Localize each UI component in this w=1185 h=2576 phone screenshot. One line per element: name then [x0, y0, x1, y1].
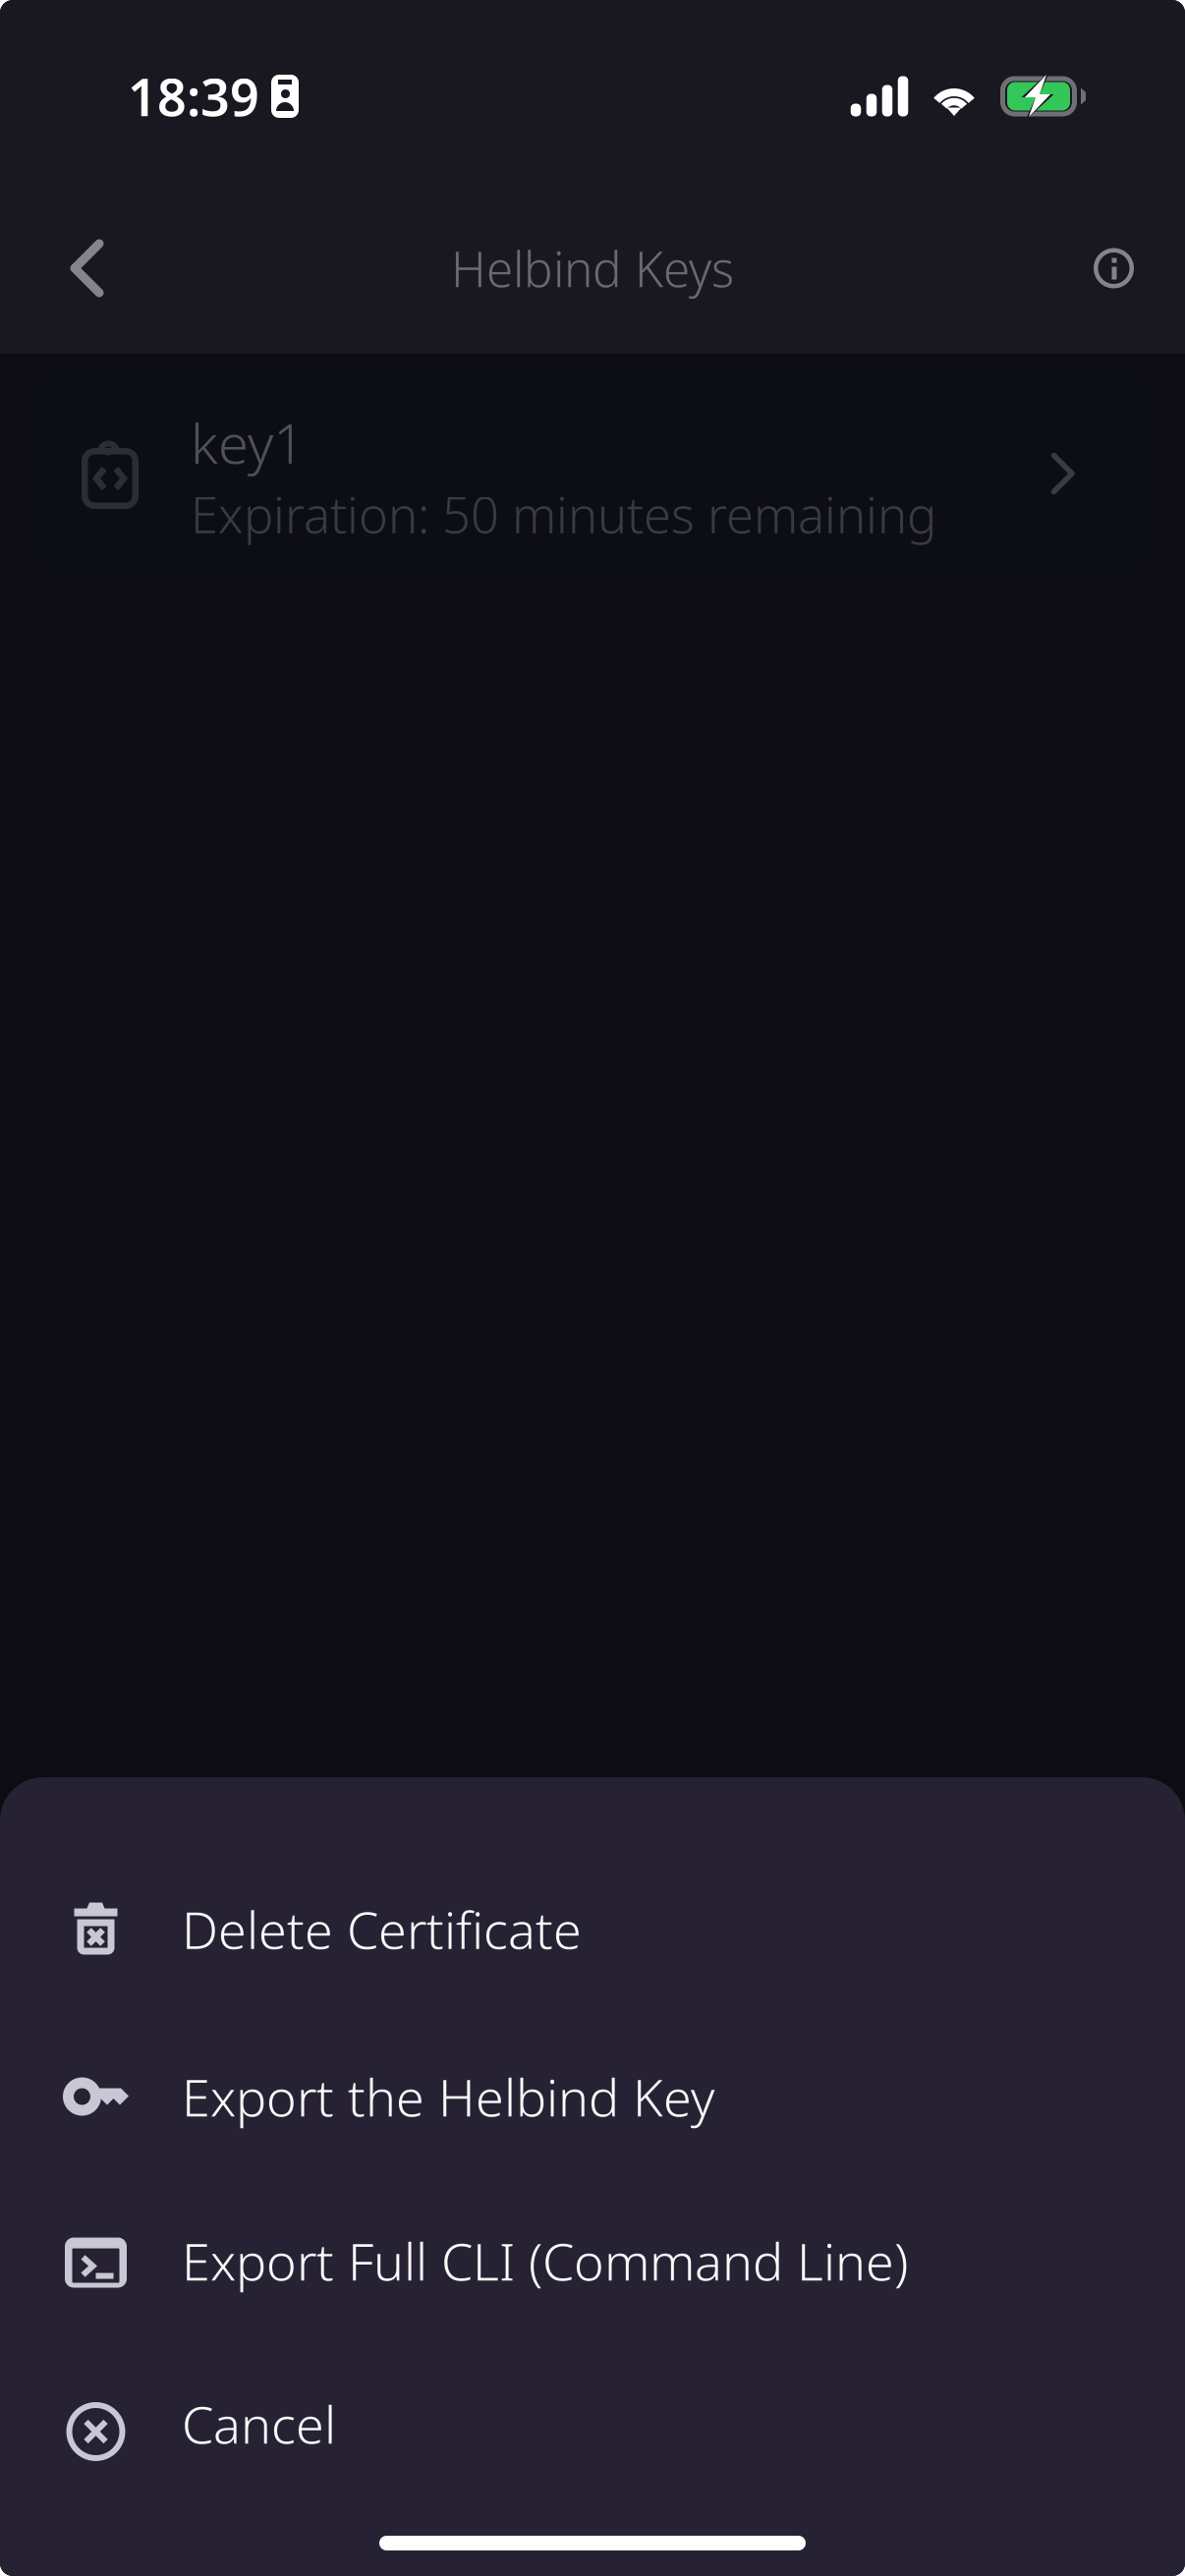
staticText: Delete Certificate [182, 1895, 582, 1963]
button[interactable]: Information [1068, 217, 1159, 320]
staticText: key1 [191, 406, 305, 479]
staticText: Helbind Keys [451, 236, 734, 300]
staticText: Expiration: 50 minutes remaining [191, 481, 936, 547]
button[interactable]: Back [43, 209, 131, 327]
staticText: 18:39 [128, 62, 259, 130]
button[interactable]: key1 [25, 367, 1160, 580]
staticText: Export Full CLI (Command Line) [182, 2227, 908, 2295]
staticText: Export the Helbind Key [182, 2063, 714, 2131]
button[interactable]: Cancel [0, 2342, 1185, 2505]
button[interactable]: Export the Helbind Key [0, 2014, 1185, 2179]
staticText: Cancel [182, 2390, 336, 2458]
button[interactable]: Delete Certificate [0, 1844, 1185, 2014]
button[interactable]: Export Full CLI (Command Line) [0, 2179, 1185, 2342]
